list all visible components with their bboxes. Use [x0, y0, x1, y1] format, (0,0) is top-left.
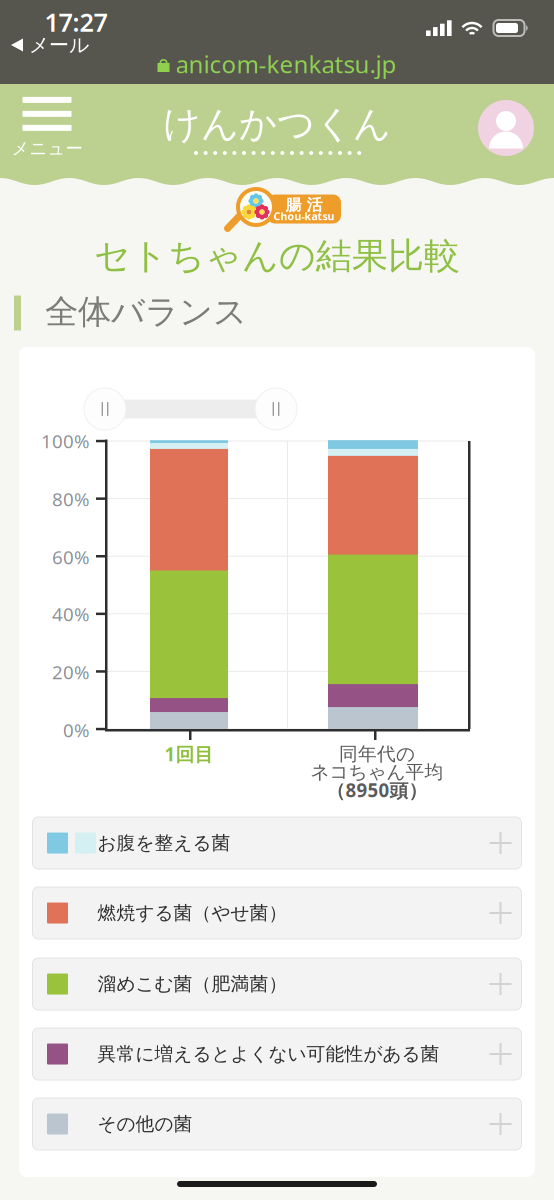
staticText: けんかつくん: [163, 101, 391, 147]
staticText: セトちゃんの結果比較: [94, 234, 460, 278]
staticText: 17:27: [44, 5, 107, 39]
staticText: 80%: [52, 487, 90, 511]
button[interactable]: アカウント: [476, 98, 536, 158]
staticText: その他の菌: [97, 1112, 192, 1135]
staticText: Chou-katsu: [273, 209, 334, 223]
staticText: 異常に増えるとよくない可能性がある菌: [97, 1042, 439, 1065]
button[interactable]: 範囲スライダー: [253, 386, 299, 432]
staticText: 燃焼する菌（やせ菌）: [97, 901, 287, 924]
staticText: 100%: [41, 429, 90, 453]
staticText: 1回目: [164, 742, 213, 766]
button[interactable]: お腹を整える菌: [32, 817, 521, 869]
staticText: anicom-kenkatsu.jp: [175, 48, 396, 80]
staticText: メニュー: [11, 138, 82, 159]
staticText: 同年代の: [339, 742, 415, 765]
staticText: お腹を整える菌: [97, 831, 230, 854]
staticText: 0%: [63, 718, 90, 742]
button[interactable]: メール: [11, 34, 131, 56]
button[interactable]: 範囲スライダー: [82, 386, 128, 432]
button[interactable]: その他の菌: [32, 1098, 521, 1150]
staticText: 20%: [52, 660, 90, 684]
staticText: 60%: [52, 545, 90, 569]
staticText: ネコちゃん平均: [310, 760, 443, 783]
staticText: 腸 活: [285, 195, 322, 215]
staticText: （8950頭）: [326, 778, 427, 802]
staticText: 溜めこむ菌（肥満菌）: [97, 972, 287, 995]
button[interactable]: 異常に増えるとよくない可能性がある菌: [32, 1028, 521, 1080]
button[interactable]: 燃焼する菌（やせ菌）: [32, 887, 521, 939]
button[interactable]: 溜めこむ菌（肥満菌）: [32, 958, 521, 1010]
staticText: メール: [29, 33, 89, 57]
button[interactable]: メニュー: [1, 90, 93, 166]
staticText: 40%: [52, 602, 90, 626]
staticText: 全体バランス: [45, 291, 247, 332]
